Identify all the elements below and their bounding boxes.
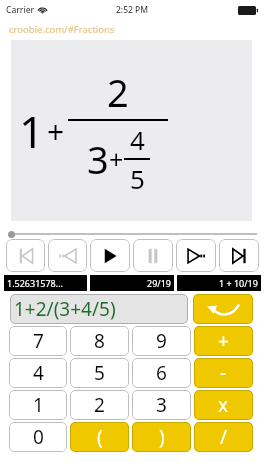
button[interactable]: 8 (70, 326, 129, 356)
staticText: x (218, 392, 229, 418)
staticText: 6 (156, 360, 167, 386)
staticText: 5 (130, 161, 145, 196)
button[interactable]: ( (70, 422, 129, 452)
staticText: / (220, 424, 228, 450)
staticText: 4 (130, 122, 145, 157)
button[interactable]: Skip to end (219, 239, 259, 272)
staticText: 9 (156, 328, 167, 354)
button[interactable]: Pause (133, 239, 173, 272)
staticText: 0 (33, 424, 44, 450)
staticText: Carrier (6, 4, 35, 16)
button[interactable]: / (194, 422, 253, 452)
staticText: 29/19 (147, 277, 171, 289)
button[interactable]: Undo (193, 294, 253, 324)
button[interactable]: 3 (132, 390, 191, 420)
button[interactable]: 1 + 10/19 (177, 275, 261, 291)
button[interactable]: ) (132, 422, 191, 452)
staticText: + (47, 111, 65, 152)
button[interactable]: 7 (9, 326, 67, 356)
staticText: 7 (33, 328, 44, 354)
staticText: 3 (87, 133, 109, 185)
button[interactable]: Play (90, 239, 130, 272)
button[interactable]: + (194, 326, 253, 356)
staticText: 1+2/(3+4/5) (14, 296, 116, 322)
button[interactable]: 29/19 (90, 275, 174, 291)
staticText: ( (97, 424, 103, 450)
staticText: 5 (94, 360, 105, 386)
button[interactable]: 6 (132, 358, 191, 388)
staticText: 2 (94, 392, 105, 418)
button[interactable]: - (194, 358, 253, 388)
staticText: 1 (19, 101, 45, 161)
staticText: ) (159, 424, 165, 450)
button[interactable]: 1+2/(3+4/5) (10, 294, 188, 324)
staticText: - (220, 360, 227, 386)
staticText: + (109, 142, 124, 176)
button[interactable]: 4 (9, 358, 67, 388)
staticText: 2:52 PM (116, 4, 149, 16)
button[interactable]: croobie.com/#Fractions (0, 20, 265, 39)
button[interactable]: Skip to start (6, 239, 45, 272)
staticText: + (218, 328, 229, 354)
staticText: 1 + 10/19 (219, 277, 258, 289)
button[interactable]: Progress slider (0, 229, 265, 239)
staticText: 3 (156, 392, 167, 418)
button[interactable]: x (194, 390, 253, 420)
button[interactable]: 1 (9, 390, 67, 420)
button[interactable]: Step back (48, 239, 87, 272)
staticText: 1 (33, 392, 44, 418)
button[interactable]: 5 (70, 358, 129, 388)
button[interactable]: 1.52631578... (4, 275, 87, 291)
button[interactable]: 2 (70, 390, 129, 420)
staticText: 1.52631578... (7, 277, 63, 289)
staticText: croobie.com/#Fractions (9, 23, 115, 36)
button[interactable]: 0 (9, 422, 67, 452)
button[interactable]: 9 (132, 326, 191, 356)
button[interactable]: Step forward (176, 239, 216, 272)
staticText: 4 (33, 360, 44, 386)
staticText: 2 (107, 66, 129, 118)
staticText: 8 (94, 328, 105, 354)
